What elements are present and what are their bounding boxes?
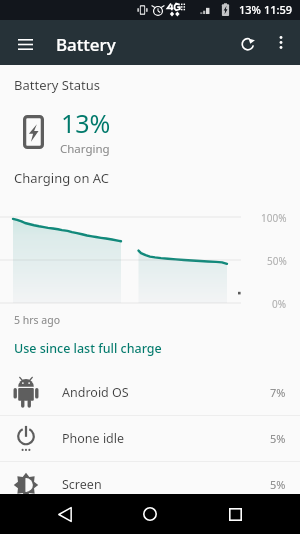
button[interactable]: Refresh [225,20,270,65]
button[interactable]: Android OS [0,370,300,415]
staticText: 50% [267,254,287,268]
button[interactable]: Phone idle [0,416,300,461]
staticText: 11:59 [264,2,293,17]
staticText: 0% [272,297,287,311]
staticText: Battery [56,33,116,56]
button[interactable]: Home [130,494,170,534]
button[interactable]: Screen [0,462,300,507]
button[interactable]: Open navigation menu [3,22,47,66]
staticText: 13% [239,2,261,17]
button[interactable]: More options [262,20,300,65]
button[interactable]: Use since last full charge [0,337,300,359]
staticText: Screen [62,476,102,493]
staticText: Phone idle [62,430,125,447]
button[interactable]: Recent apps [215,494,255,534]
staticText: 5% [270,477,286,492]
staticText: 5% [270,431,286,446]
staticText: Android OS [62,384,129,401]
staticText: Battery Status [14,76,100,94]
staticText: Charging on AC [14,169,110,187]
staticText: 100% [261,211,287,225]
staticText: Charging [60,141,110,157]
staticText: 5 hrs ago [14,313,61,327]
staticText: 13% [61,106,111,140]
staticText: Use since last full charge [14,340,162,357]
staticText: 7% [270,385,286,400]
button[interactable]: Back [45,494,85,534]
